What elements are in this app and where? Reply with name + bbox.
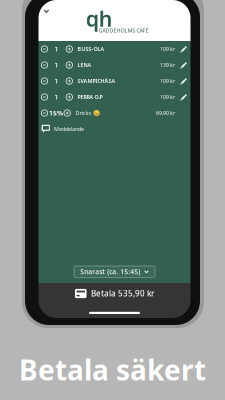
staticText: Dricks [75,109,91,117]
staticText: 1 [54,77,58,85]
staticText: 69,90 kr [156,109,175,117]
staticText: Snarast (ca. 15:45) [80,267,140,276]
staticText: GÄDDEHOLMS CAFÉ [98,27,148,34]
staticText: Betala 535,90 kr [91,288,154,299]
staticText: 1 [54,93,58,101]
staticText: 1 [54,45,58,53]
staticText: 15% [49,109,63,117]
staticText: BUSS-OLA [77,45,104,53]
staticText: Meddelande [54,125,84,133]
staticText: 109 kr [160,45,175,53]
staticText: 139 kr [160,61,175,69]
staticText: PERRA O.P [77,93,102,101]
button[interactable]: Betala 535,90 kr [75,287,154,300]
button[interactable]: Snarast (ca. 15:45) [74,266,155,277]
staticText: qh [86,4,113,33]
staticText: SVAMPICHÅSA [77,77,115,85]
button[interactable]: 1 [38,41,190,57]
button[interactable]: Meddelande [38,121,190,137]
staticText: 109 kr [160,77,175,85]
button[interactable]: 15% [38,105,190,121]
button[interactable]: 1 [38,57,190,73]
button[interactable]: Close [38,3,54,19]
button[interactable]: 1 [38,89,190,105]
button[interactable]: 1 [38,73,190,89]
staticText: 109 kr [160,93,175,101]
staticText: 1 [54,61,58,69]
staticText: Betala säkert [19,351,206,388]
staticText: LENA [77,61,91,69]
